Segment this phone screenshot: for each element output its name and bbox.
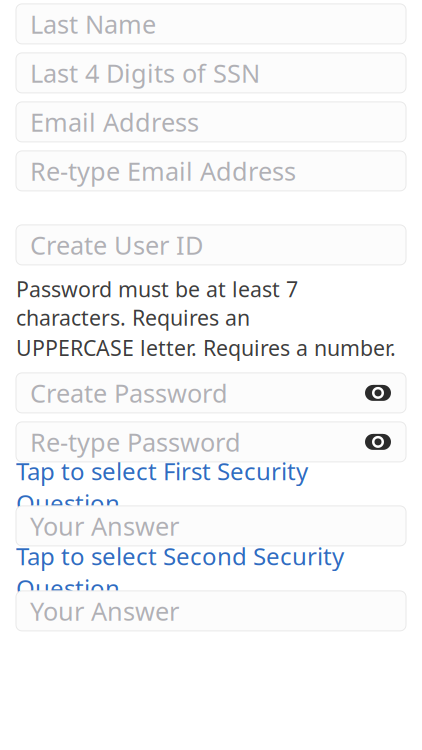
staticText: Create User ID — [30, 228, 203, 262]
button[interactable]: Re-type Password — [16, 422, 406, 462]
button[interactable]: Tap to select Second Security Question — [16, 559, 406, 585]
button[interactable]: Your Answer — [16, 506, 406, 546]
staticText: Your Answer — [30, 509, 179, 543]
button[interactable]: Tap to select First Security Question — [16, 474, 406, 500]
button[interactable]: Your Answer — [16, 591, 406, 631]
staticText: Tap to select Second Security Question — [16, 540, 344, 604]
staticText: Email Address — [30, 105, 199, 139]
button[interactable]: Email Address — [16, 102, 406, 142]
staticText: Re-type Password — [30, 425, 241, 459]
staticText: Re-type Email Address — [30, 154, 296, 188]
button[interactable]: Create User ID — [16, 225, 406, 265]
staticText: Password must be at least 7 characters. … — [16, 275, 298, 332]
button[interactable]: Create Password — [16, 373, 406, 413]
staticText: Create Password — [30, 376, 228, 410]
staticText: Last Name — [30, 7, 156, 41]
staticText: Last 4 Digits of SSN — [30, 56, 260, 90]
staticText: Your Answer — [30, 594, 179, 628]
button[interactable]: Last 4 Digits of SSN — [16, 53, 406, 93]
staticText: Tap to select First Security Question — [16, 455, 308, 519]
button[interactable]: Re-type Email Address — [16, 151, 406, 191]
staticText: UPPERCASE letter. Requires a number. — [16, 334, 396, 362]
button[interactable]: Last Name — [16, 4, 406, 44]
